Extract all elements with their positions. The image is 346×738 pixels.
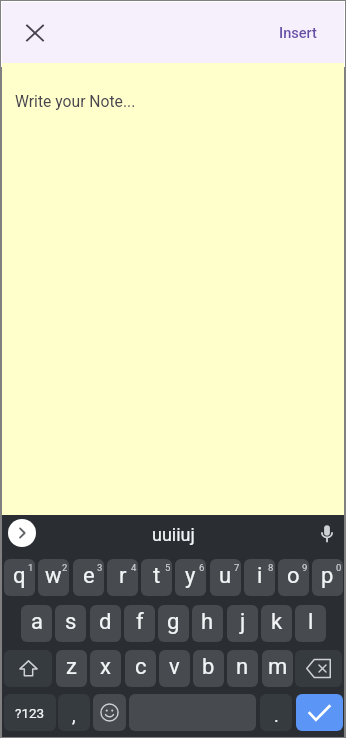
- button[interactable]: m: [262, 650, 293, 687]
- button[interactable]: s: [55, 605, 86, 642]
- button[interactable]: Insert: [272, 17, 324, 48]
- button[interactable]: t: [141, 559, 172, 596]
- staticText: v: [169, 654, 180, 680]
- staticText: uuiiuj: [152, 524, 195, 545]
- staticText: o: [287, 563, 300, 589]
- staticText: g: [167, 609, 180, 635]
- button[interactable]: j: [227, 605, 258, 642]
- button[interactable]: k: [261, 605, 292, 642]
- button[interactable]: Symbols: [4, 694, 56, 731]
- staticText: z: [66, 654, 77, 680]
- button[interactable]: Emoji: [93, 694, 126, 731]
- staticText: Insert: [279, 24, 317, 41]
- button[interactable]: i: [244, 559, 275, 596]
- button[interactable]: d: [90, 605, 121, 642]
- button[interactable]: n: [227, 650, 258, 687]
- staticText: h: [201, 609, 214, 635]
- button[interactable]: h: [192, 605, 223, 642]
- staticText: 7: [234, 562, 240, 573]
- button[interactable]: v: [159, 650, 190, 687]
- button[interactable]: e: [73, 559, 104, 596]
- staticText: s: [65, 609, 77, 635]
- staticText: 9: [302, 562, 308, 573]
- staticText: q: [13, 563, 26, 589]
- staticText: l: [308, 609, 314, 635]
- button[interactable]: Enter: [296, 694, 343, 731]
- button[interactable]: w: [38, 559, 69, 596]
- staticText: 0: [336, 562, 342, 573]
- staticText: 1: [28, 562, 34, 573]
- staticText: 4: [131, 562, 137, 573]
- button[interactable]: p: [312, 559, 343, 596]
- staticText: k: [271, 609, 283, 635]
- button[interactable]: z: [56, 650, 87, 687]
- staticText: 5: [165, 562, 171, 573]
- staticText: 2: [62, 562, 68, 573]
- staticText: i: [257, 563, 263, 589]
- staticText: .: [274, 705, 279, 726]
- staticText: r: [119, 563, 127, 589]
- staticText: 3: [97, 562, 103, 573]
- button[interactable]: Voice input: [312, 519, 342, 549]
- staticText: u: [219, 563, 232, 589]
- staticText: ,: [72, 705, 76, 726]
- staticText: b: [202, 654, 215, 680]
- staticText: t: [153, 563, 161, 589]
- button[interactable]: b: [193, 650, 224, 687]
- staticText: e: [83, 563, 95, 589]
- button[interactable]: Period: [260, 694, 292, 731]
- button[interactable]: c: [125, 650, 156, 687]
- button[interactable]: x: [90, 650, 121, 687]
- staticText: ?123: [15, 705, 45, 721]
- staticText: w: [45, 563, 62, 589]
- button[interactable]: Shift: [4, 650, 52, 687]
- staticText: d: [99, 609, 112, 635]
- button[interactable]: r: [107, 559, 138, 596]
- staticText: a: [31, 609, 43, 635]
- button[interactable]: Close: [15, 13, 55, 53]
- staticText: j: [240, 609, 246, 635]
- button[interactable]: u: [210, 559, 241, 596]
- button[interactable]: q: [4, 559, 35, 596]
- staticText: m: [268, 654, 288, 680]
- staticText: x: [100, 654, 111, 680]
- button[interactable]: o: [278, 559, 309, 596]
- button[interactable]: Comma: [58, 694, 90, 731]
- staticText: f: [136, 609, 144, 635]
- staticText: p: [321, 563, 334, 589]
- staticText: c: [135, 654, 147, 680]
- button[interactable]: f: [124, 605, 155, 642]
- button[interactable]: y: [175, 559, 206, 596]
- staticText: 8: [268, 562, 274, 573]
- staticText: n: [236, 654, 249, 680]
- staticText: Write your Note...: [15, 92, 136, 110]
- staticText: 6: [199, 562, 205, 573]
- button[interactable]: Expand suggestions: [8, 519, 36, 547]
- staticText: y: [185, 563, 196, 589]
- button[interactable]: l: [295, 605, 326, 642]
- button[interactable]: Backspace: [295, 650, 342, 687]
- button[interactable]: a: [21, 605, 52, 642]
- button[interactable]: g: [158, 605, 189, 642]
